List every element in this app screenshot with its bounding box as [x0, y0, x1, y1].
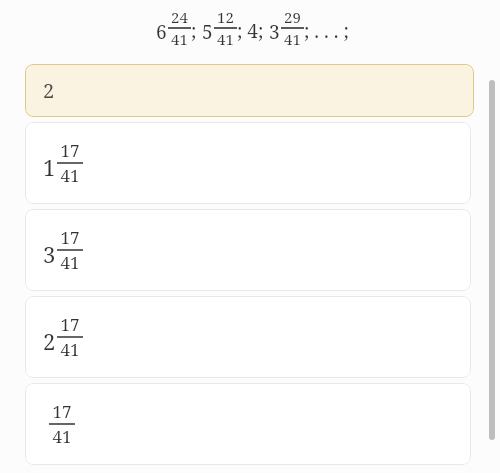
- button[interactable]: 3: [25, 209, 471, 291]
- staticText: 1: [43, 152, 56, 182]
- staticText: 17: [60, 226, 80, 249]
- staticText: 41: [60, 164, 80, 187]
- button[interactable]: 2: [25, 296, 471, 378]
- staticText: ; 4;: [237, 18, 269, 44]
- staticText: 12: [217, 7, 234, 27]
- button[interactable]: 1: [25, 122, 471, 204]
- staticText: 41: [171, 29, 188, 49]
- staticText: 29: [284, 7, 301, 27]
- staticText: 24: [171, 7, 188, 27]
- staticText: 41: [217, 29, 234, 49]
- staticText: 17: [52, 400, 72, 423]
- staticText: 41: [284, 29, 301, 49]
- staticText: ; . . . ;: [304, 18, 349, 44]
- staticText: 41: [52, 425, 72, 448]
- staticText: 3: [269, 19, 280, 45]
- staticText: 2: [43, 77, 55, 104]
- staticText: 5: [202, 19, 213, 45]
- staticText: 17: [60, 139, 80, 162]
- staticText: 41: [60, 338, 80, 361]
- staticText: 6: [156, 19, 167, 45]
- button[interactable]: 2: [25, 64, 474, 117]
- staticText: 2: [43, 326, 56, 356]
- staticText: ;: [191, 18, 202, 44]
- staticText: 41: [60, 251, 80, 274]
- staticText: 3: [43, 239, 56, 269]
- button[interactable]: 17: [25, 383, 471, 465]
- staticText: 17: [60, 313, 80, 336]
